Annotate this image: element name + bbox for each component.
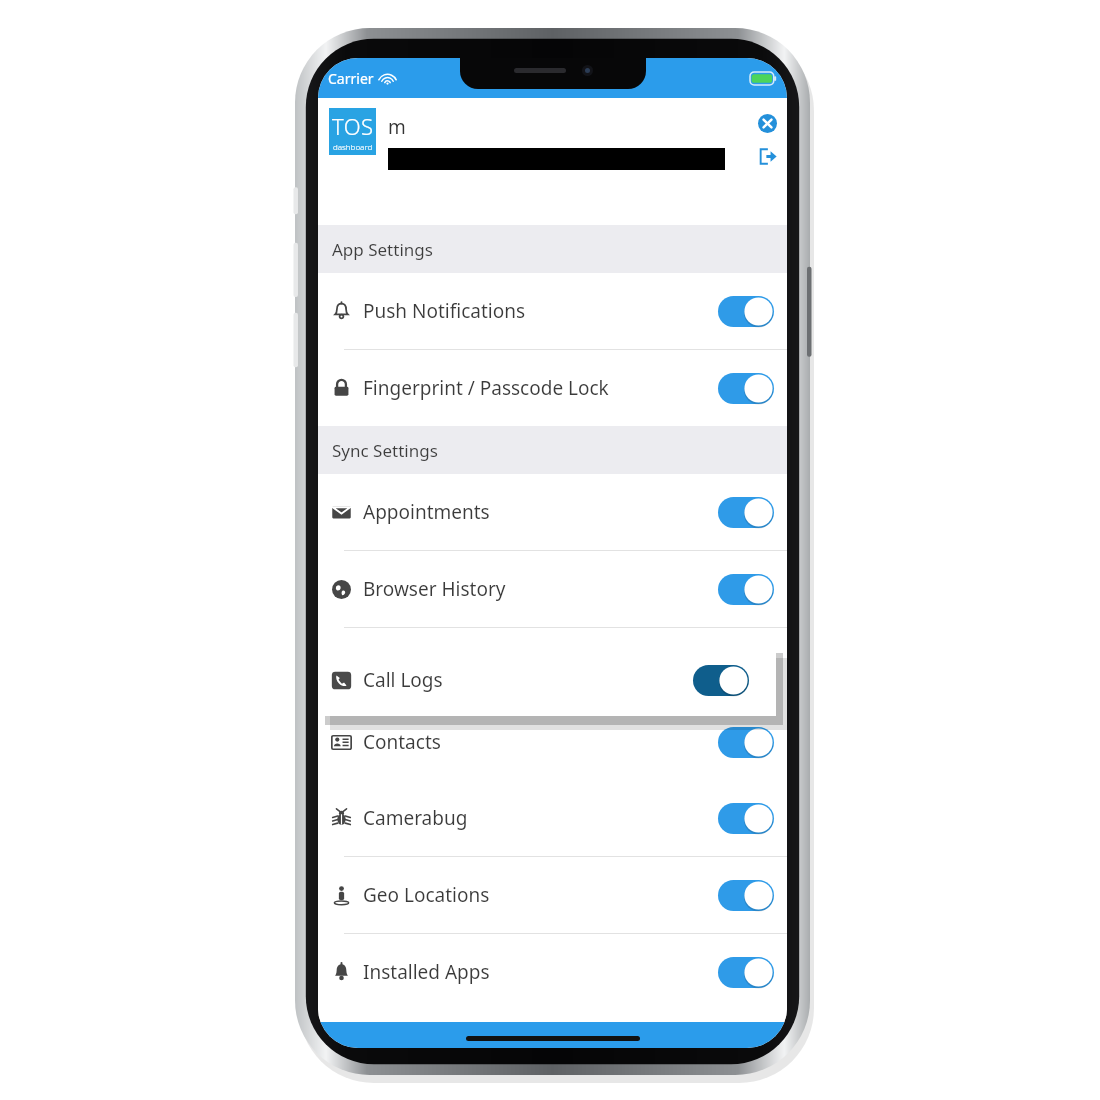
staticText: Installed Apps bbox=[363, 959, 490, 985]
button[interactable]: Installed Apps bbox=[318, 934, 787, 1010]
staticText: Carrier bbox=[328, 69, 374, 88]
staticText: Call Logs bbox=[363, 667, 443, 693]
button[interactable]: Geo Locations bbox=[318, 857, 787, 933]
staticText: Fingerprint / Passcode Lock bbox=[363, 375, 609, 401]
staticText: Sync Settings bbox=[332, 439, 438, 462]
staticText: Geo Locations bbox=[363, 882, 490, 908]
button[interactable]: Close bbox=[754, 110, 780, 136]
button[interactable]: Appointments bbox=[318, 474, 787, 550]
button[interactable]: Toggle on bbox=[718, 727, 774, 758]
button[interactable]: Toggle on bbox=[718, 497, 774, 528]
button[interactable]: TOS bbox=[329, 108, 376, 155]
staticText: App Settings bbox=[332, 238, 433, 261]
button[interactable]: Toggle on bbox=[718, 373, 774, 404]
button[interactable]: Fingerprint / Passcode Lock bbox=[318, 350, 787, 426]
button[interactable]: Push Notifications bbox=[318, 273, 787, 349]
button[interactable]: Toggle on bbox=[718, 957, 774, 988]
button[interactable]: Toggle on bbox=[718, 296, 774, 327]
staticText: m bbox=[388, 114, 406, 140]
staticText: Contacts bbox=[363, 729, 441, 755]
staticText: Browser History bbox=[363, 576, 506, 602]
button[interactable]: Browser History bbox=[318, 551, 787, 627]
button[interactable]: Call Logs bbox=[318, 644, 776, 716]
button[interactable]: Toggle on bbox=[718, 574, 774, 605]
staticText: TOS bbox=[332, 111, 374, 141]
button[interactable]: Toggle on bbox=[693, 665, 749, 696]
button[interactable]: Toggle on bbox=[718, 803, 774, 834]
button[interactable]: Log out bbox=[754, 143, 780, 169]
button[interactable]: Camerabug bbox=[318, 780, 787, 856]
staticText: Push Notifications bbox=[363, 298, 526, 324]
button[interactable]: Contacts bbox=[318, 704, 787, 780]
staticText: Camerabug bbox=[363, 805, 468, 831]
button[interactable]: Toggle on bbox=[718, 880, 774, 911]
staticText: Appointments bbox=[363, 499, 490, 525]
staticText: dashboard bbox=[333, 141, 373, 152]
